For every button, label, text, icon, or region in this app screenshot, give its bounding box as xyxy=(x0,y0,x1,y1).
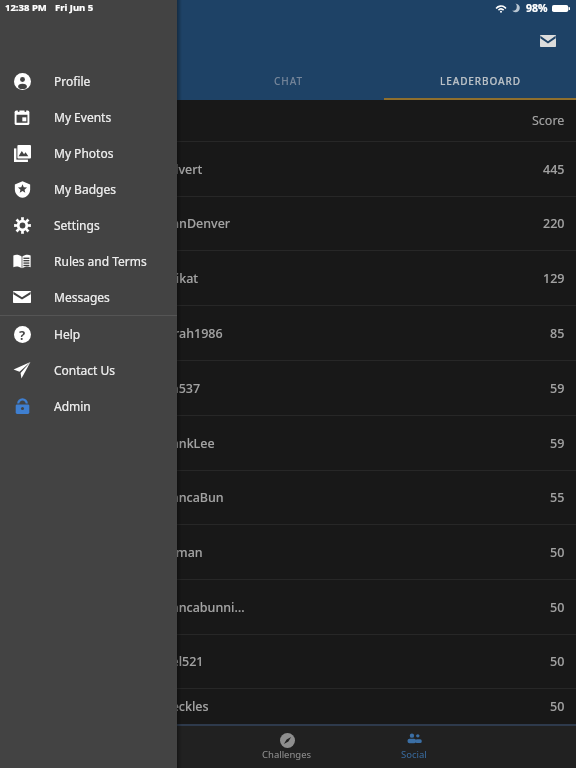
button[interactable]: Admin xyxy=(0,388,177,424)
staticText: Jen537 xyxy=(160,380,201,397)
button[interactable]: Blancabunni… xyxy=(0,580,576,634)
staticText: Blancabunni… xyxy=(160,599,245,616)
staticText: 50 xyxy=(550,698,565,715)
staticText: 220 xyxy=(543,215,565,232)
staticText: JohnDenver xyxy=(160,215,231,232)
staticText: Social xyxy=(401,748,427,761)
staticText: Fri Jun 5 xyxy=(55,1,94,14)
staticText: Pitman xyxy=(160,544,203,561)
button[interactable]: Jen537 xyxy=(0,361,576,415)
button[interactable]: Calvert xyxy=(0,142,576,196)
staticText: 50 xyxy=(550,653,565,670)
staticText: 50 xyxy=(550,599,565,616)
staticText: 98% xyxy=(526,1,548,15)
button[interactable]: Chikat xyxy=(0,251,576,305)
staticText: 50 xyxy=(550,544,565,561)
staticText: My Photos xyxy=(54,145,114,161)
button[interactable]: Social xyxy=(366,726,462,768)
staticText: Score xyxy=(532,112,565,129)
staticText: CHAT xyxy=(274,74,303,88)
staticText: Help xyxy=(54,326,81,342)
staticText: Profile xyxy=(54,73,91,89)
button[interactable]: Challenges xyxy=(239,726,335,768)
staticText: 59 xyxy=(550,435,565,452)
button[interactable]: Rules and Terms xyxy=(0,243,177,279)
button[interactable]: Messages xyxy=(0,279,177,315)
staticText: ? xyxy=(19,326,26,343)
button[interactable]: Mel521 xyxy=(0,635,576,688)
button[interactable]: ? xyxy=(0,316,177,352)
button[interactable]: My Photos xyxy=(0,135,177,171)
button[interactable]: CHAT xyxy=(192,68,384,100)
staticText: My Badges xyxy=(54,181,116,197)
staticText: FrankLee xyxy=(160,435,215,452)
button[interactable]: Freckles xyxy=(0,689,576,724)
button[interactable]: Sarah1986 xyxy=(0,306,576,360)
staticText: 85 xyxy=(550,325,565,342)
staticText: Freckles xyxy=(160,698,209,715)
staticText: Challenges xyxy=(262,748,312,761)
button[interactable]: Pitman xyxy=(0,525,576,579)
button[interactable]: BlancaBun xyxy=(0,471,576,524)
button[interactable]: JohnDenver xyxy=(0,197,576,250)
staticText: Messages xyxy=(54,289,110,305)
staticText: 12:38 PM xyxy=(5,1,47,14)
button[interactable]: Messages xyxy=(533,26,563,56)
button[interactable]: LEADERBOARD xyxy=(384,68,576,100)
staticText: BlancaBun xyxy=(160,489,224,506)
staticText: Rules and Terms xyxy=(54,253,147,269)
button[interactable]: Settings xyxy=(0,207,177,243)
button[interactable]: FEED xyxy=(0,68,192,100)
staticText: Settings xyxy=(54,217,100,233)
button[interactable]: My Events xyxy=(0,99,177,135)
button[interactable]: My Badges xyxy=(0,171,177,207)
staticText: FEED xyxy=(82,74,110,88)
staticText: LEADERBOARD xyxy=(440,74,521,88)
staticText: My Events xyxy=(54,109,112,125)
staticText: Calvert xyxy=(160,161,203,178)
staticText: Chikat xyxy=(160,270,199,287)
staticText: 55 xyxy=(550,489,565,506)
button[interactable]: Profile xyxy=(0,63,177,99)
staticText: Admin xyxy=(54,398,91,414)
staticText: Contact Us xyxy=(54,362,116,378)
staticText: 445 xyxy=(543,161,565,178)
button[interactable]: Contact Us xyxy=(0,352,177,388)
button[interactable]: FrankLee xyxy=(0,416,576,470)
staticText: Mel521 xyxy=(160,653,204,670)
staticText: 59 xyxy=(550,380,565,397)
staticText: Sarah1986 xyxy=(160,325,223,342)
staticText: 129 xyxy=(543,270,565,287)
